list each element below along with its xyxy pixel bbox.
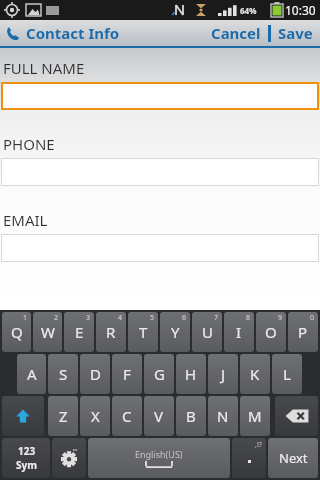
button[interactable]: S (48, 354, 78, 394)
staticText: T (139, 322, 148, 342)
staticText: X (91, 406, 100, 426)
staticText: Q (11, 322, 23, 342)
staticText: D (90, 364, 101, 384)
staticText: A (27, 364, 37, 384)
button[interactable]: J (208, 354, 238, 394)
button[interactable] (1, 158, 319, 186)
staticText: Next (279, 449, 308, 467)
staticText: 3 (86, 313, 91, 323)
staticText: G (154, 364, 165, 384)
button[interactable]: L (272, 354, 302, 394)
button[interactable]: N (208, 396, 238, 436)
staticText: 123 (18, 444, 36, 458)
staticText: EMAIL (3, 210, 48, 230)
staticText: 2 (54, 313, 59, 323)
staticText: U (202, 322, 213, 342)
staticText: L (283, 364, 291, 384)
staticText: K (250, 364, 260, 384)
staticText: V (154, 406, 164, 426)
staticText: 5 (150, 313, 155, 323)
button[interactable]: Q (2, 312, 31, 352)
staticText: Sym (16, 458, 37, 472)
staticText: S (59, 364, 68, 384)
button[interactable]: 123 (2, 438, 50, 478)
button[interactable]: X (80, 396, 110, 436)
staticText: PHONE (3, 134, 55, 154)
button[interactable]: E (64, 312, 94, 352)
staticText: 4 (118, 313, 123, 323)
button[interactable]: English(US) (88, 438, 230, 478)
button[interactable]: R (96, 312, 126, 352)
button[interactable]: T (128, 312, 158, 352)
button[interactable]: D (80, 354, 110, 394)
staticText: ,!? (255, 440, 262, 450)
staticText: 6 (182, 313, 187, 323)
button[interactable]: P (288, 312, 318, 352)
button[interactable]: B (176, 396, 206, 436)
staticText: 1 (23, 313, 28, 323)
button[interactable]: Cancel (204, 20, 268, 46)
staticText: 64% (240, 5, 257, 16)
button[interactable]: W (33, 312, 62, 352)
staticText: 0 (310, 313, 315, 323)
button[interactable]: M (240, 396, 270, 436)
staticText: English(US) (135, 448, 183, 460)
staticText: J (221, 364, 226, 384)
staticText: W (41, 322, 55, 342)
staticText: Contact Info (26, 23, 120, 43)
button[interactable]: I (224, 312, 254, 352)
staticText: H (185, 364, 197, 384)
staticText: Cancel (211, 23, 261, 43)
button[interactable]: Call (0, 20, 126, 46)
button[interactable]: Shift (2, 396, 44, 436)
staticText: Save (278, 23, 313, 43)
button[interactable]: Save (271, 20, 320, 46)
staticText: R (106, 322, 116, 342)
button[interactable]: A (17, 354, 46, 394)
staticText: I (236, 322, 242, 342)
staticText: 9 (278, 313, 283, 323)
button[interactable]: C (112, 396, 142, 436)
button[interactable]: H (176, 354, 206, 394)
staticText: N (217, 406, 229, 426)
button[interactable] (1, 82, 319, 110)
staticText: M (248, 406, 262, 426)
button[interactable]: Next (268, 438, 318, 478)
staticText: 7 (214, 313, 219, 323)
staticText: B (186, 406, 196, 426)
button[interactable]: U (192, 312, 222, 352)
button[interactable]: G (144, 354, 174, 394)
staticText: P (298, 322, 308, 342)
button[interactable]: Period (232, 438, 266, 478)
staticText: Z (59, 406, 68, 426)
button[interactable]: Settings (52, 438, 86, 478)
staticText: 10:30 (285, 2, 316, 18)
button[interactable]: Z (48, 396, 78, 436)
staticText: F (123, 364, 131, 384)
button[interactable] (1, 234, 319, 262)
button[interactable]: F (112, 354, 142, 394)
button[interactable]: Y (160, 312, 190, 352)
button[interactable]: Backspace (275, 396, 318, 436)
staticText: O (265, 322, 277, 342)
button[interactable]: V (144, 396, 174, 436)
staticText: 8 (246, 313, 251, 323)
button[interactable]: K (240, 354, 270, 394)
staticText: FULL NAME (3, 58, 85, 78)
staticText: Y (171, 322, 180, 342)
other: Call (4, 24, 22, 42)
staticText: E (75, 322, 84, 342)
staticText: C (122, 406, 132, 426)
button[interactable]: O (256, 312, 286, 352)
